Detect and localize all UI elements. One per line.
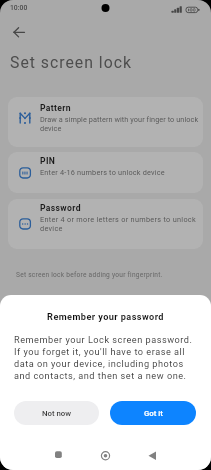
staticText: 10:00 — [10, 4, 28, 12]
staticText: Set screen lock — [10, 53, 132, 72]
staticText: PIN — [40, 156, 56, 166]
button[interactable] — [141, 447, 211, 470]
staticText: Password — [40, 203, 81, 213]
button[interactable]: PIN — [8, 152, 203, 193]
staticText: Got it — [144, 409, 163, 418]
button[interactable]: Password — [8, 199, 203, 249]
staticText: Draw a simple pattern with your finger t… — [40, 115, 199, 133]
staticText: Remember your password — [0, 311, 211, 322]
staticText: Pattern — [40, 103, 71, 113]
button[interactable]: Got it — [110, 401, 196, 425]
staticText: Enter 4-16 numbers to unlock device — [40, 168, 165, 177]
staticText: Not now — [42, 409, 72, 418]
button[interactable] — [0, 447, 71, 470]
button[interactable] — [8, 22, 28, 42]
staticText: Set screen lock before adding your finge… — [16, 271, 163, 279]
staticText: Remember your Lock screen password. If y… — [14, 334, 193, 381]
button[interactable]: Not now — [14, 401, 99, 425]
button[interactable] — [71, 447, 141, 470]
staticText: Enter 4 or more letters or numbers to un… — [40, 215, 196, 233]
button[interactable]: Pattern — [8, 97, 203, 147]
